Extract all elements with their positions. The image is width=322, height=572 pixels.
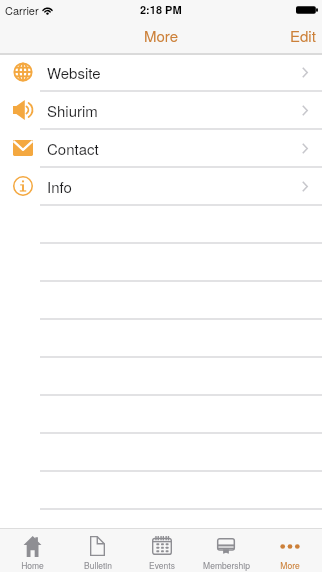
staticText: Bulletin — [84, 559, 112, 571]
button[interactable]: More — [144, 25, 179, 46]
staticText: Events — [149, 559, 175, 571]
staticText: More — [144, 25, 179, 46]
staticText: Edit — [290, 25, 316, 46]
button[interactable]: Events — [130, 529, 194, 572]
staticText: Membership — [203, 559, 250, 571]
button[interactable]: Shiurim — [0, 92, 322, 128]
button[interactable]: Website — [0, 54, 322, 90]
button[interactable]: Home — [0, 529, 65, 572]
button[interactable]: Membership — [194, 529, 258, 572]
staticText: Info — [47, 176, 72, 197]
button[interactable]: Contact — [0, 130, 322, 166]
button[interactable]: Edit — [278, 22, 322, 49]
staticText: Carrier — [5, 2, 39, 18]
button[interactable]: Info — [0, 168, 322, 204]
button[interactable]: Bulletin — [65, 529, 130, 572]
staticText: Home — [21, 559, 44, 571]
other: More — [280, 544, 300, 549]
button[interactable]: More — [258, 529, 322, 572]
staticText: Shiurim — [47, 100, 98, 121]
staticText: Contact — [47, 138, 99, 159]
other: Battery — [296, 5, 318, 15]
staticText: 2:18 PM — [140, 2, 182, 18]
staticText: More — [280, 559, 300, 571]
staticText: Website — [47, 62, 101, 83]
